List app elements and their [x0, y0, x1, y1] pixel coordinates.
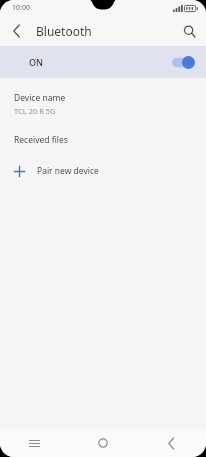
button[interactable]: Recent apps: [0, 429, 68, 457]
button[interactable]: Received files: [0, 123, 206, 156]
staticText: TCL 20 R 5G: [14, 106, 56, 116]
staticText: ON: [29, 56, 44, 68]
staticText: Pair new device: [37, 165, 99, 177]
staticText: Bluetooth: [36, 23, 92, 39]
button[interactable]: Back: [137, 429, 206, 457]
staticText: Device name: [14, 92, 66, 104]
button[interactable]: Home: [68, 429, 137, 457]
button[interactable]: ON: [0, 46, 206, 78]
staticText: 10:00: [12, 3, 30, 13]
staticText: Received files: [14, 134, 68, 146]
button[interactable]: Device name: [0, 89, 206, 123]
button[interactable]: Pair new device: [0, 156, 206, 186]
button[interactable]: Back: [5, 19, 29, 43]
button[interactable]: Search: [177, 19, 201, 43]
